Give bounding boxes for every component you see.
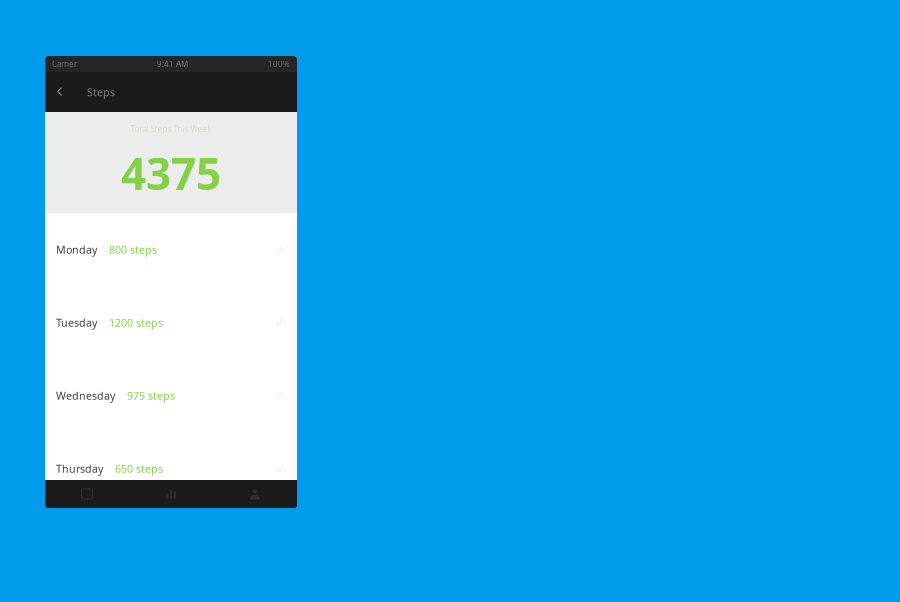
staticText: 650 steps <box>115 461 163 476</box>
staticText: Steps <box>87 85 115 99</box>
button[interactable]: Me <box>213 480 297 508</box>
staticText: Carrier <box>52 59 77 69</box>
button[interactable]: Thursday <box>45 432 297 505</box>
staticText: 4375 <box>121 144 221 202</box>
button[interactable]: Steps <box>87 72 115 112</box>
staticText: Tuesday <box>56 315 97 330</box>
staticText: Monday <box>56 242 97 257</box>
staticText: 800 steps <box>109 242 157 257</box>
button[interactable]: Monday <box>45 213 297 286</box>
staticText: 9:41 AM <box>157 59 188 69</box>
button[interactable]: Today <box>45 480 129 508</box>
staticText: 975 steps <box>127 388 175 403</box>
button[interactable]: Back <box>45 72 69 112</box>
staticText: Thursday <box>56 461 103 476</box>
staticText: 1200 steps <box>109 315 163 330</box>
staticText: Wednesday <box>56 388 115 403</box>
button[interactable]: Tuesday <box>45 286 297 359</box>
button[interactable]: Wednesday <box>45 359 297 432</box>
staticText: 100% <box>268 59 290 69</box>
staticText: Total Steps This Week <box>130 124 211 134</box>
